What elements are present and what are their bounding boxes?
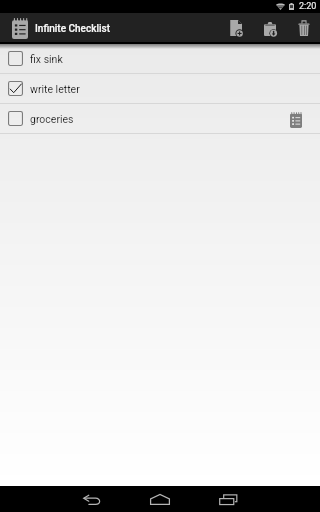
button[interactable]: Paste list	[258, 13, 282, 42]
button[interactable]: write letter	[0, 74, 320, 104]
button[interactable]: fix sink	[0, 44, 320, 74]
button[interactable]: Back	[68, 486, 116, 512]
staticText: write letter	[30, 83, 80, 95]
staticText: groceries	[30, 113, 74, 125]
staticText: fix sink	[30, 53, 63, 65]
staticText: Infinite Checklist	[35, 23, 110, 35]
button[interactable]: Home	[136, 486, 184, 512]
button[interactable]: Delete	[292, 13, 316, 42]
staticText: 2:20	[299, 1, 317, 12]
button[interactable]: groceries	[0, 104, 320, 134]
button[interactable]: Recent apps	[204, 486, 252, 512]
button[interactable]: New list	[224, 13, 248, 42]
